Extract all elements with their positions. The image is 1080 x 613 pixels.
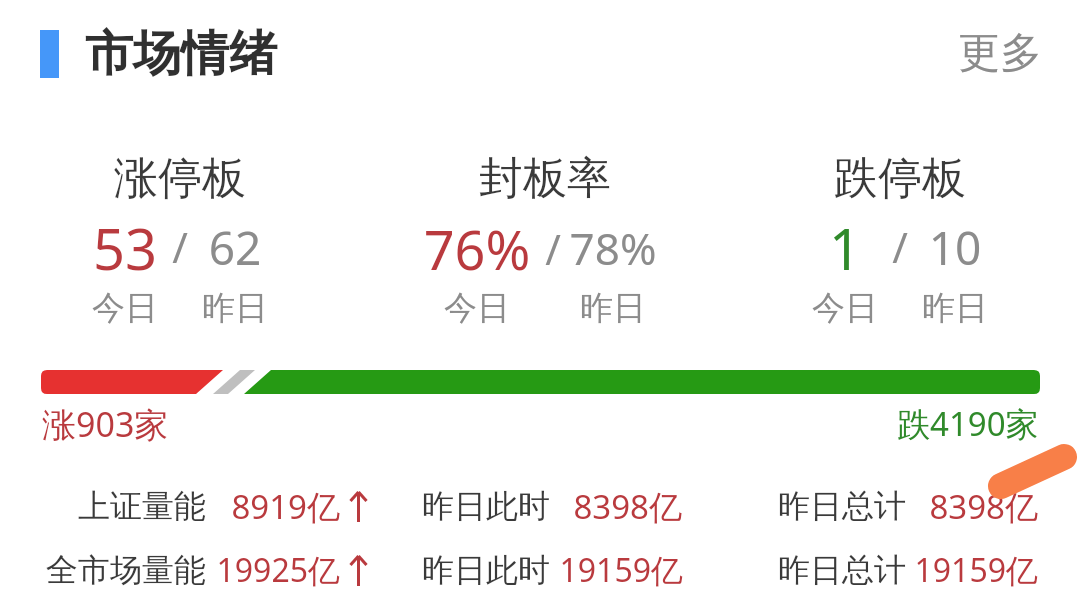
staticText: 全市场量能 xyxy=(0,550,206,590)
staticText: 19159亿 xyxy=(263,548,683,592)
staticText: 今日 xyxy=(277,287,677,329)
staticText: 53 xyxy=(0,210,325,286)
staticText: 今日 xyxy=(645,287,1045,329)
staticText: 涨903家 xyxy=(42,401,169,447)
staticText: 封板率 xyxy=(345,151,745,206)
button[interactable]: 涨903家 xyxy=(42,401,169,447)
staticText: 市场情绪 xyxy=(85,24,277,84)
staticText: 跌4190家 xyxy=(897,401,1039,446)
button[interactable] xyxy=(420,543,688,587)
staticText: 8919亿 xyxy=(0,484,340,529)
staticText: 1 xyxy=(645,210,1045,286)
staticText: / xyxy=(700,218,1080,275)
button[interactable] xyxy=(0,140,360,335)
button[interactable]: 市场情绪 xyxy=(40,24,277,84)
staticText: 10 xyxy=(755,216,1080,279)
staticText: 19925亿 xyxy=(0,548,340,592)
staticText: 昨日此时 xyxy=(130,486,550,526)
staticText: 78% xyxy=(413,218,813,278)
button[interactable] xyxy=(76,479,372,523)
button[interactable] xyxy=(420,479,688,523)
staticText: 今日 xyxy=(0,287,325,329)
staticText: 昨日 xyxy=(755,287,1080,329)
other: Highlighter mark xyxy=(986,442,1080,502)
staticText: / xyxy=(353,220,753,277)
staticText: 昨日此时 xyxy=(130,550,550,590)
button[interactable]: 跌4190家 xyxy=(897,401,1039,446)
button[interactable] xyxy=(776,543,1044,587)
staticText: 涨停板 xyxy=(0,151,380,206)
staticText: 昨日总计 xyxy=(486,550,906,590)
staticText: / xyxy=(0,218,380,275)
staticText: 62 xyxy=(35,216,435,279)
staticText: 更多 xyxy=(958,27,1042,80)
staticText: 昨日 xyxy=(413,287,813,329)
staticText: 8398亿 xyxy=(262,484,682,529)
button[interactable] xyxy=(720,140,1080,335)
button[interactable]: 更多 xyxy=(948,17,1052,90)
staticText: 8398亿 xyxy=(618,484,1038,529)
button[interactable] xyxy=(365,140,725,335)
staticText: 昨日 xyxy=(35,287,435,329)
staticText: 19159亿 xyxy=(618,548,1038,592)
staticText: 76% xyxy=(277,212,677,286)
staticText: 跌停板 xyxy=(700,151,1080,206)
button[interactable] xyxy=(776,479,1044,523)
button[interactable] xyxy=(42,543,372,587)
staticText: 上证量能 xyxy=(0,486,206,526)
staticText: 昨日总计 xyxy=(486,486,906,526)
